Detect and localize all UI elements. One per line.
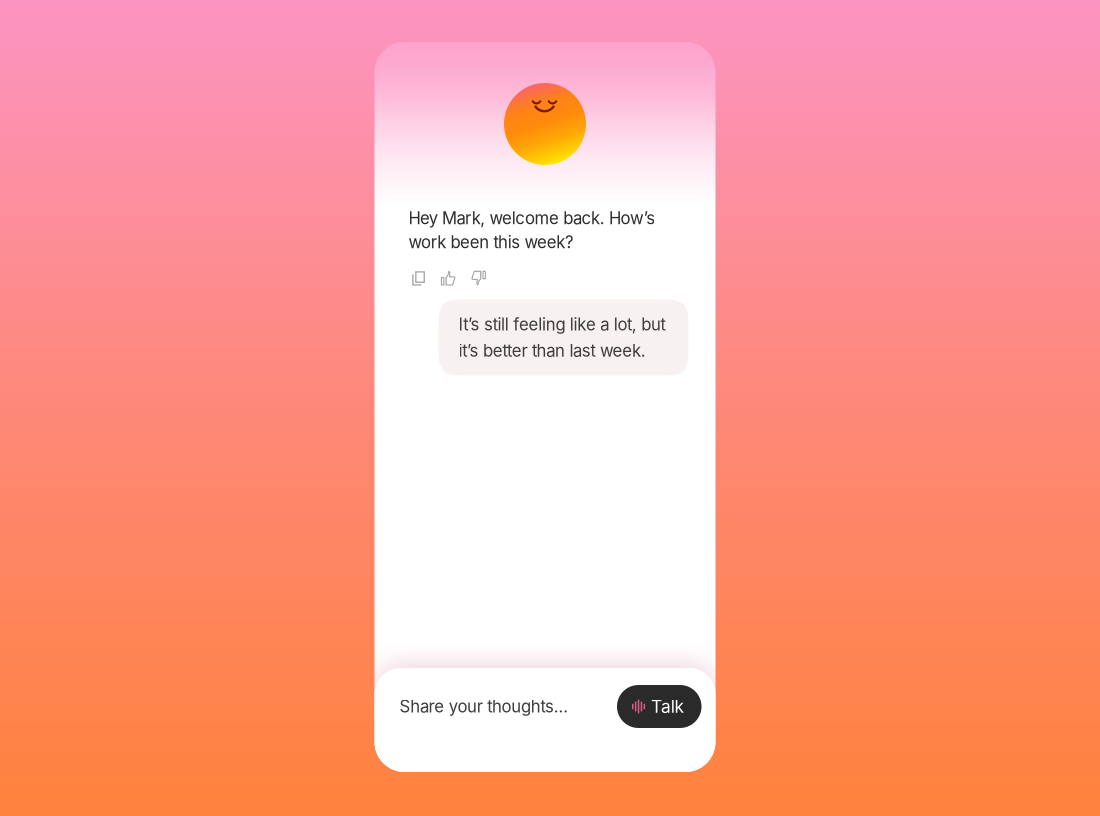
button[interactable]: Good response bbox=[440, 270, 456, 286]
staticText: Hey Mark, welcome back. How’s work been … bbox=[408, 208, 655, 252]
staticText: It’s still feeling like a lot, but it’s … bbox=[458, 314, 666, 361]
button[interactable]: Talk bbox=[617, 685, 701, 728]
button[interactable]: Bad response bbox=[471, 270, 486, 286]
staticText: Talk bbox=[651, 696, 684, 717]
staticText: Share your thoughts... bbox=[399, 696, 568, 717]
button[interactable]: Share your thoughts bbox=[399, 696, 617, 717]
button[interactable]: Copy bbox=[411, 270, 425, 286]
